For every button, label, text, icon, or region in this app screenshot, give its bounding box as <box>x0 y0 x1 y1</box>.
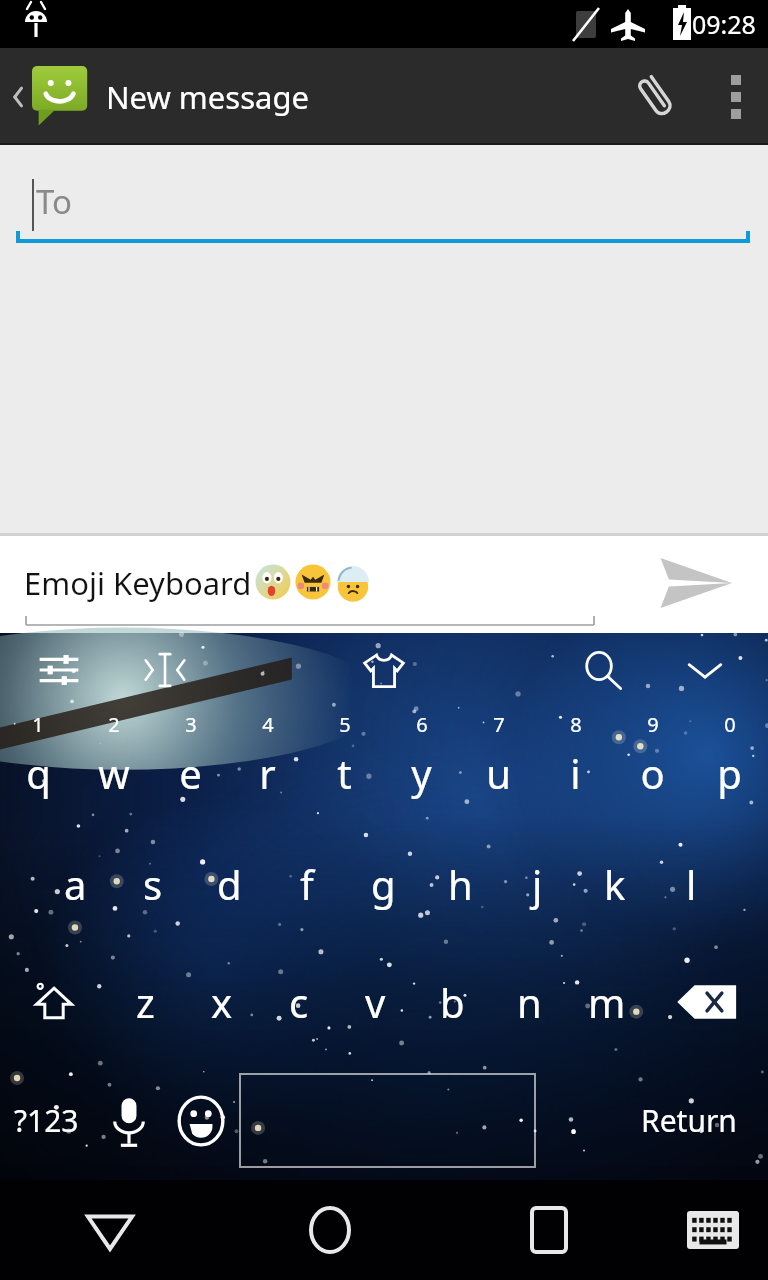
button[interactable]: j <box>499 825 576 943</box>
staticText: g <box>371 857 396 911</box>
staticText: 0 <box>724 711 736 738</box>
button[interactable]: Space <box>237 1061 538 1180</box>
staticText: x <box>211 975 233 1029</box>
button[interactable]: Send <box>620 533 768 633</box>
button[interactable]: a <box>37 825 114 943</box>
button[interactable]: Voice input <box>93 1061 165 1180</box>
staticText: 6 <box>416 711 428 738</box>
button[interactable]: Attach <box>608 48 704 145</box>
button[interactable]: Kaomoji <box>132 637 198 703</box>
staticText: h <box>448 857 473 911</box>
staticText: 9 <box>647 711 659 738</box>
button[interactable]: 0 <box>691 707 768 825</box>
button[interactable]: x <box>183 943 260 1061</box>
staticText: 4 <box>262 711 274 738</box>
button[interactable]: 8 <box>537 707 614 825</box>
button[interactable]: 2 <box>76 707 152 825</box>
button[interactable]: Back <box>0 1180 220 1280</box>
staticText: d <box>217 857 242 911</box>
staticText: 2 <box>108 711 120 738</box>
staticText: 7 <box>493 711 505 738</box>
staticText: ?123 <box>14 1100 79 1141</box>
staticText: To <box>36 179 73 224</box>
button[interactable]: n <box>491 943 568 1061</box>
staticText: p <box>717 746 742 800</box>
staticText: f <box>300 857 314 911</box>
button[interactable]: f <box>268 825 345 943</box>
button[interactable]: Hide keyboard <box>672 637 738 703</box>
button[interactable]: v <box>337 943 414 1061</box>
staticText: v <box>365 975 386 1029</box>
staticText: c <box>289 975 309 1029</box>
staticText: . <box>569 1098 579 1144</box>
button[interactable]: Navigate up <box>6 66 96 128</box>
button[interactable]: To <box>16 165 750 245</box>
staticText: 09:28 <box>692 7 756 41</box>
button[interactable]: z <box>107 943 183 1061</box>
staticText: 5 <box>339 711 351 738</box>
staticText: l <box>686 857 697 911</box>
staticText: z <box>136 975 155 1029</box>
button[interactable]: Search <box>570 637 636 703</box>
staticText: i <box>570 746 581 800</box>
button[interactable]: Return <box>610 1061 768 1180</box>
button[interactable]: Emoji <box>165 1061 237 1180</box>
staticText: s <box>143 857 163 911</box>
button[interactable]: 4 <box>229 707 306 825</box>
staticText: w <box>98 746 130 800</box>
staticText: Return <box>641 1100 737 1141</box>
button[interactable]: Themes <box>351 637 417 703</box>
button[interactable]: 7 <box>460 707 537 825</box>
button[interactable]: More options <box>704 48 768 145</box>
button[interactable]: 5 <box>306 707 383 825</box>
button[interactable]: ?123 <box>0 1061 93 1180</box>
button[interactable]: . <box>538 1061 610 1180</box>
staticText: New message <box>106 76 309 118</box>
button[interactable]: Home <box>220 1180 439 1280</box>
button[interactable]: Switch keyboard <box>658 1180 768 1280</box>
button[interactable]: Recent apps <box>439 1180 658 1280</box>
staticText: a <box>64 857 87 911</box>
button[interactable]: l <box>653 825 730 943</box>
staticText: q <box>26 746 51 800</box>
staticText: u <box>486 746 511 800</box>
staticText: o <box>640 746 665 800</box>
staticText: 1 <box>32 711 44 738</box>
button[interactable]: Shift <box>0 943 107 1061</box>
staticText: t <box>337 746 352 800</box>
staticText: j <box>532 857 543 911</box>
staticText: b <box>440 975 465 1029</box>
button[interactable]: k <box>576 825 653 943</box>
button[interactable]: b <box>414 943 491 1061</box>
staticText: n <box>517 975 542 1029</box>
button[interactable]: 9 <box>614 707 691 825</box>
button[interactable]: c <box>260 943 337 1061</box>
button[interactable]: Backspace <box>645 943 768 1061</box>
staticText: k <box>604 857 626 911</box>
staticText: m <box>588 975 626 1029</box>
button[interactable]: Emoji Keyboard <box>24 533 596 633</box>
button[interactable]: g <box>345 825 422 943</box>
button[interactable]: 1 <box>0 707 76 825</box>
staticText: 3 <box>185 711 197 738</box>
button[interactable]: 6 <box>383 707 460 825</box>
button[interactable]: Settings <box>26 637 92 703</box>
staticText: r <box>259 746 276 800</box>
button[interactable]: h <box>422 825 499 943</box>
button[interactable]: d <box>191 825 268 943</box>
button[interactable]: s <box>114 825 191 943</box>
staticText: e <box>179 746 202 800</box>
staticText: Emoji Keyboard <box>24 562 252 604</box>
staticText: 8 <box>570 711 582 738</box>
staticText: y <box>411 746 432 800</box>
button[interactable]: m <box>568 943 645 1061</box>
button[interactable]: 3 <box>152 707 229 825</box>
